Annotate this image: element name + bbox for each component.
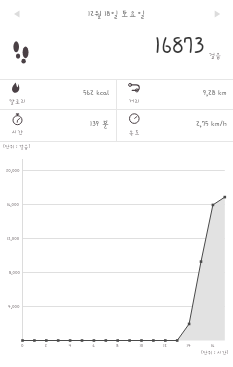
button[interactable]: 12월 18일 토요일 xyxy=(32,1,201,27)
button[interactable]: 거리 9,28 km xyxy=(117,80,233,110)
button[interactable]: 16873 걸음 xyxy=(0,28,233,79)
button[interactable]: 칼로리 562 kcal xyxy=(0,80,117,110)
button[interactable]: 시간 139 분 xyxy=(0,110,117,141)
button[interactable]: Previous day xyxy=(2,1,32,27)
button[interactable]: 속도 2,75 km/h xyxy=(117,110,233,141)
button[interactable]: Next day xyxy=(201,1,231,27)
